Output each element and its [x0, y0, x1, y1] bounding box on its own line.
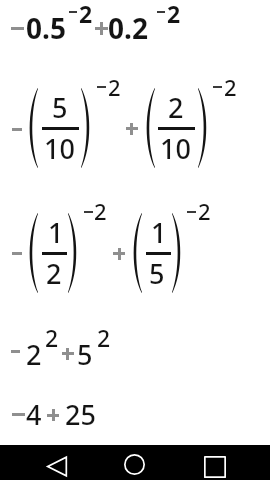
- staticText: 5: [77, 336, 93, 373]
- staticText: 0.5: [26, 9, 66, 47]
- staticText: 2: [94, 196, 107, 226]
- button[interactable]: Home: [120, 450, 149, 479]
- staticText: 4: [26, 396, 42, 433]
- button[interactable]: Recent apps: [200, 452, 229, 480]
- staticText: 1: [151, 214, 167, 251]
- staticText: 2: [97, 322, 111, 353]
- staticText: 5: [149, 255, 165, 292]
- staticText: 2: [224, 72, 237, 102]
- staticText: 1: [48, 214, 64, 251]
- staticText: 2: [167, 0, 181, 29]
- staticText: 2: [108, 72, 121, 102]
- staticText: 10: [44, 130, 75, 167]
- button[interactable]: Back: [42, 452, 71, 480]
- staticText: 2: [46, 255, 62, 292]
- staticText: 10: [160, 130, 191, 167]
- staticText: 2: [45, 322, 59, 353]
- staticText: 2: [26, 336, 42, 373]
- staticText: 0.2: [108, 9, 148, 47]
- staticText: 25: [65, 396, 96, 433]
- staticText: 2: [168, 89, 184, 126]
- staticText: 2: [79, 0, 93, 29]
- staticText: 2: [198, 196, 211, 226]
- staticText: 5: [52, 89, 68, 126]
